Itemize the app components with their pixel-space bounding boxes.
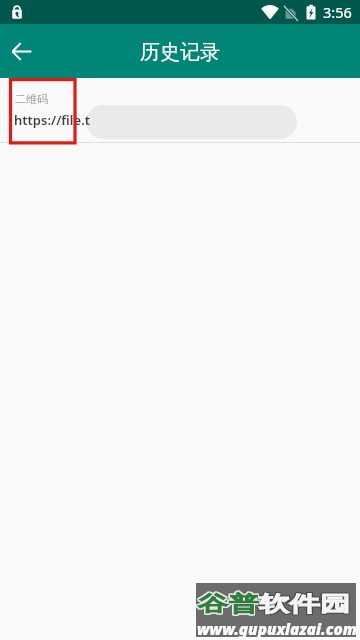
staticText: 谷普 <box>197 590 258 617</box>
staticText: https://file.t <box>14 111 91 129</box>
staticText: 谷普 <box>198 592 259 618</box>
staticText: 谷普 <box>198 591 259 617</box>
staticText: 3:56 <box>323 2 352 22</box>
staticText: 二维码 <box>15 92 48 106</box>
staticText: 谷普 <box>197 591 258 617</box>
staticText: 软件园 <box>260 590 351 617</box>
staticText: 软件园 <box>259 592 350 618</box>
button[interactable]: 二维码 <box>0 78 360 142</box>
staticText: www.gupuxlazai.com <box>197 619 356 637</box>
staticText: 谷普 <box>197 592 258 618</box>
button[interactable]: Back <box>1 31 41 71</box>
staticText: 谷普 <box>199 591 260 617</box>
staticText: 软件园 <box>259 591 350 617</box>
staticText: 谷普 <box>199 592 260 618</box>
staticText: 软件园 <box>258 590 349 617</box>
staticText: 软件园 <box>260 592 351 618</box>
staticText: 谷普 <box>199 590 260 617</box>
staticText: 软件园 <box>260 591 351 617</box>
staticText: 软件园 <box>259 590 350 617</box>
staticText: 谷普 <box>198 590 259 617</box>
staticText: 历史记录 <box>140 40 220 65</box>
staticText: 软件园 <box>258 592 349 618</box>
staticText: 软件园 <box>258 591 349 617</box>
